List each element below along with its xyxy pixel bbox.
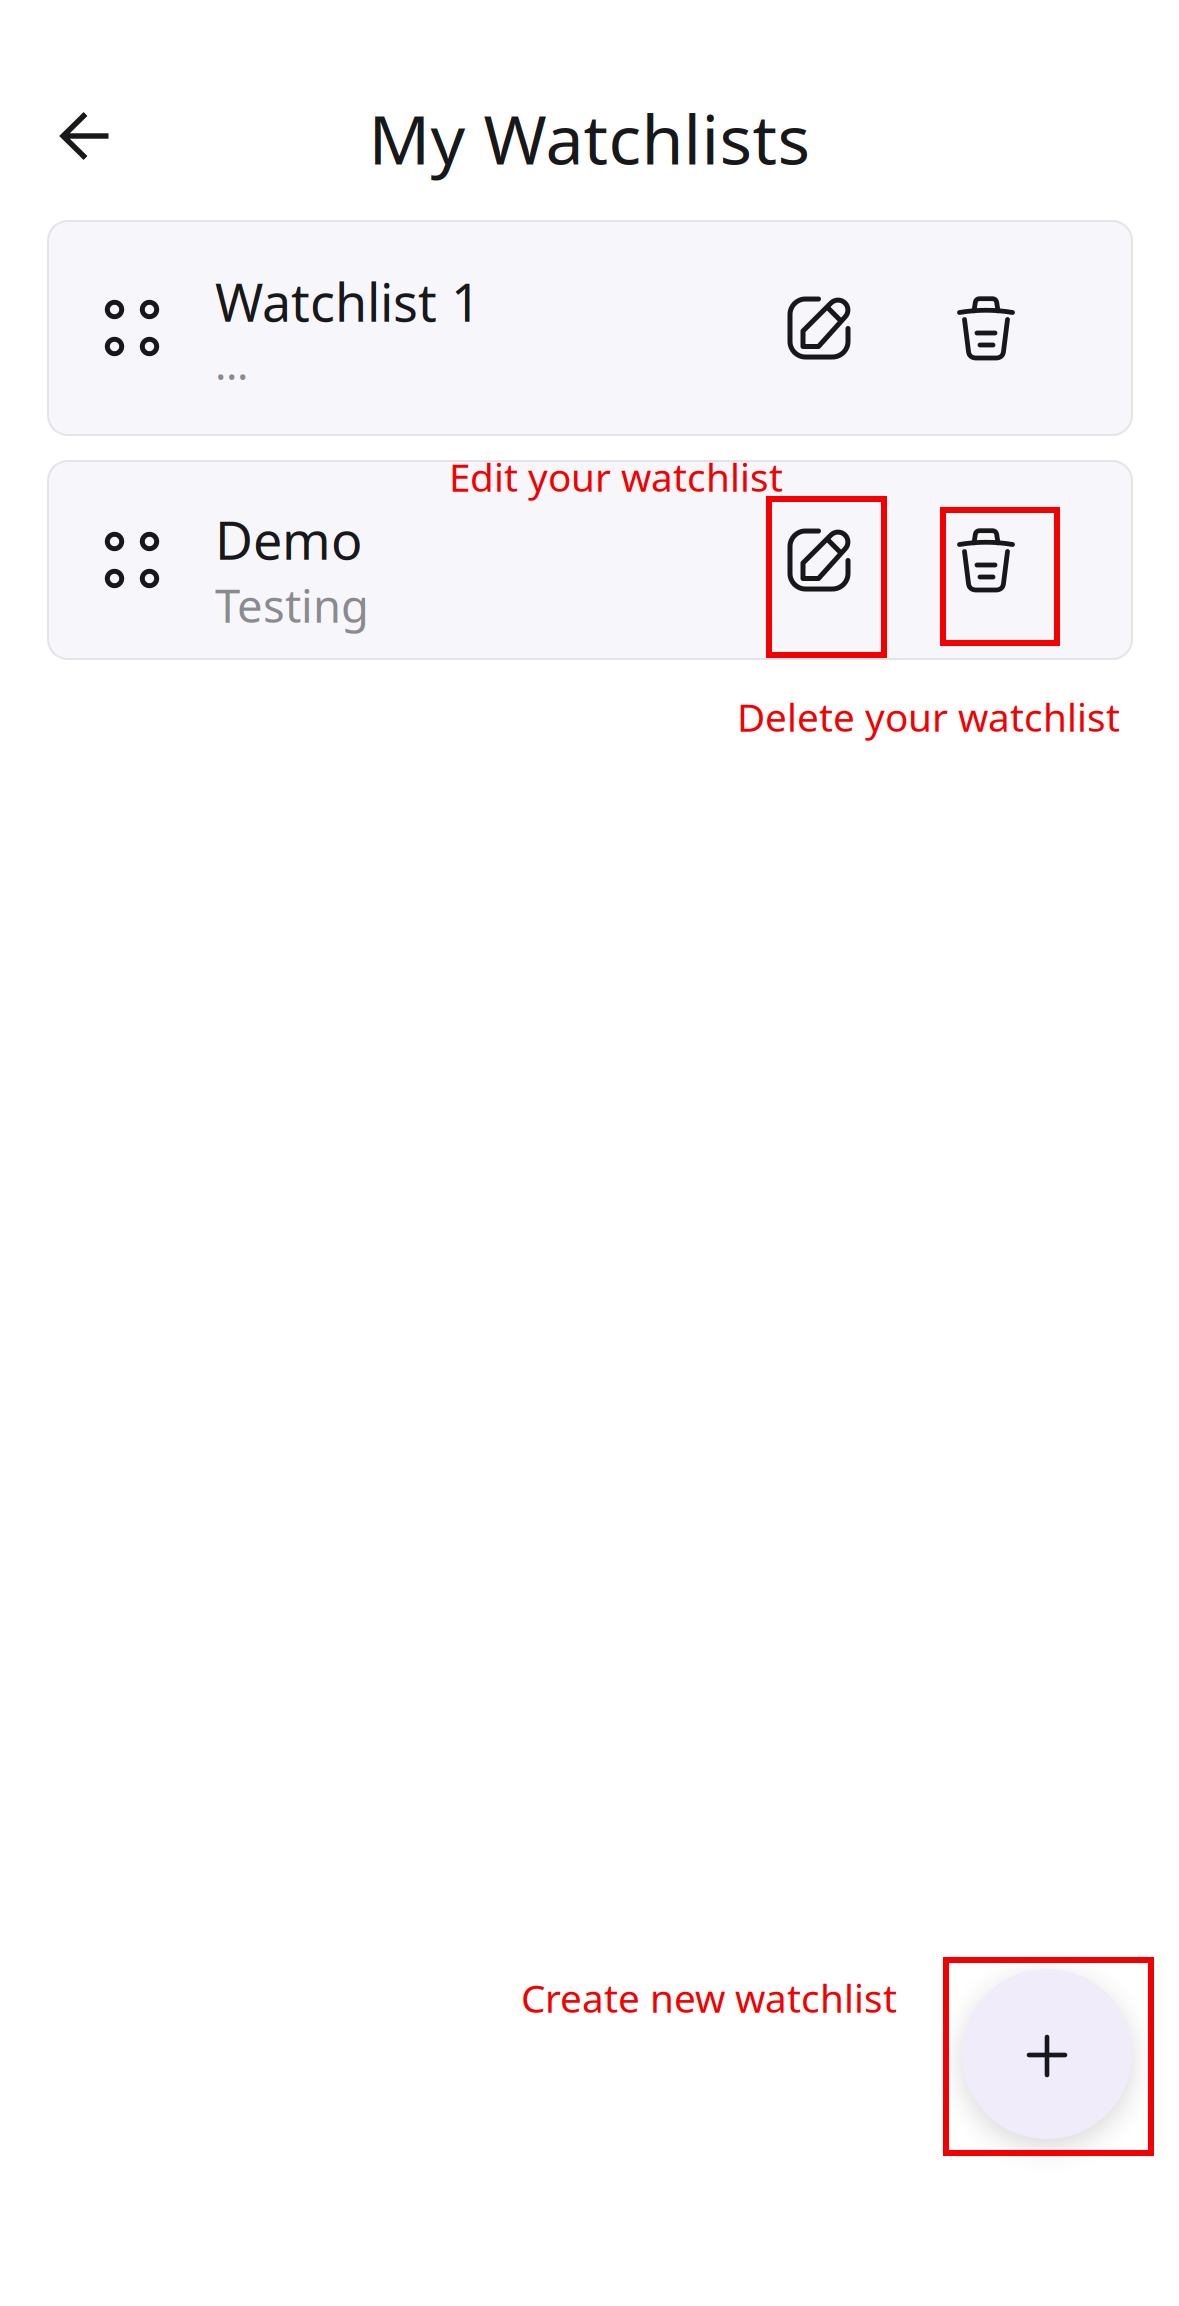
staticText: Delete your watchlist [737,691,1120,742]
button[interactable]: Delete watchlist [926,268,1046,388]
staticText: Edit your watchlist [449,451,783,502]
button[interactable]: Create new watchlist [962,1969,1132,2139]
button[interactable]: Edit watchlist [759,268,879,388]
button[interactable]: Demo [48,461,1132,659]
staticText: Testing [215,575,369,635]
staticText: Demo [215,505,362,574]
button[interactable]: Delete watchlist [926,500,1046,620]
staticText: Create new watchlist [521,1972,897,2023]
button[interactable]: Watchlist 1 [48,221,1132,435]
staticText: Watchlist 1 [215,267,481,336]
staticText: ... [215,335,248,392]
staticText: My Watchlists [368,93,810,183]
button[interactable]: Back [31,81,141,191]
button[interactable]: Edit watchlist [759,500,879,620]
